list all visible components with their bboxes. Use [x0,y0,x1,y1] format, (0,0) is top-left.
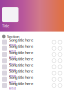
staticText: Artist [9,62,16,65]
staticText: Artist [9,56,16,59]
staticText: Song title here [9,62,33,67]
button[interactable]: Song title here [0,82,64,89]
staticText: Song title here [9,68,33,74]
staticText: Song title here [9,81,33,86]
staticText: Artist [9,74,16,78]
button[interactable]: Song title here [0,70,64,76]
button[interactable]: Song title here [0,76,64,82]
button[interactable]: Song title here [0,64,64,70]
button[interactable]: Song title here [0,45,64,51]
staticText: Section [7,34,19,39]
staticText: Song title here [9,37,33,43]
staticText: Artist [9,80,16,84]
staticText: Artist [9,68,16,72]
staticText: Song title here [9,75,33,80]
staticText: Artist [9,87,16,90]
staticText: Artist [9,49,16,53]
staticText: Song title here [9,56,33,61]
staticText: Title [2,23,9,28]
staticText: Artist [9,43,16,47]
button[interactable]: Song title here [0,51,64,58]
button[interactable]: Song title here [0,39,64,45]
button[interactable]: Song title here [0,58,64,64]
staticText: Song title here [9,44,33,49]
staticText: Song title here [9,50,33,55]
